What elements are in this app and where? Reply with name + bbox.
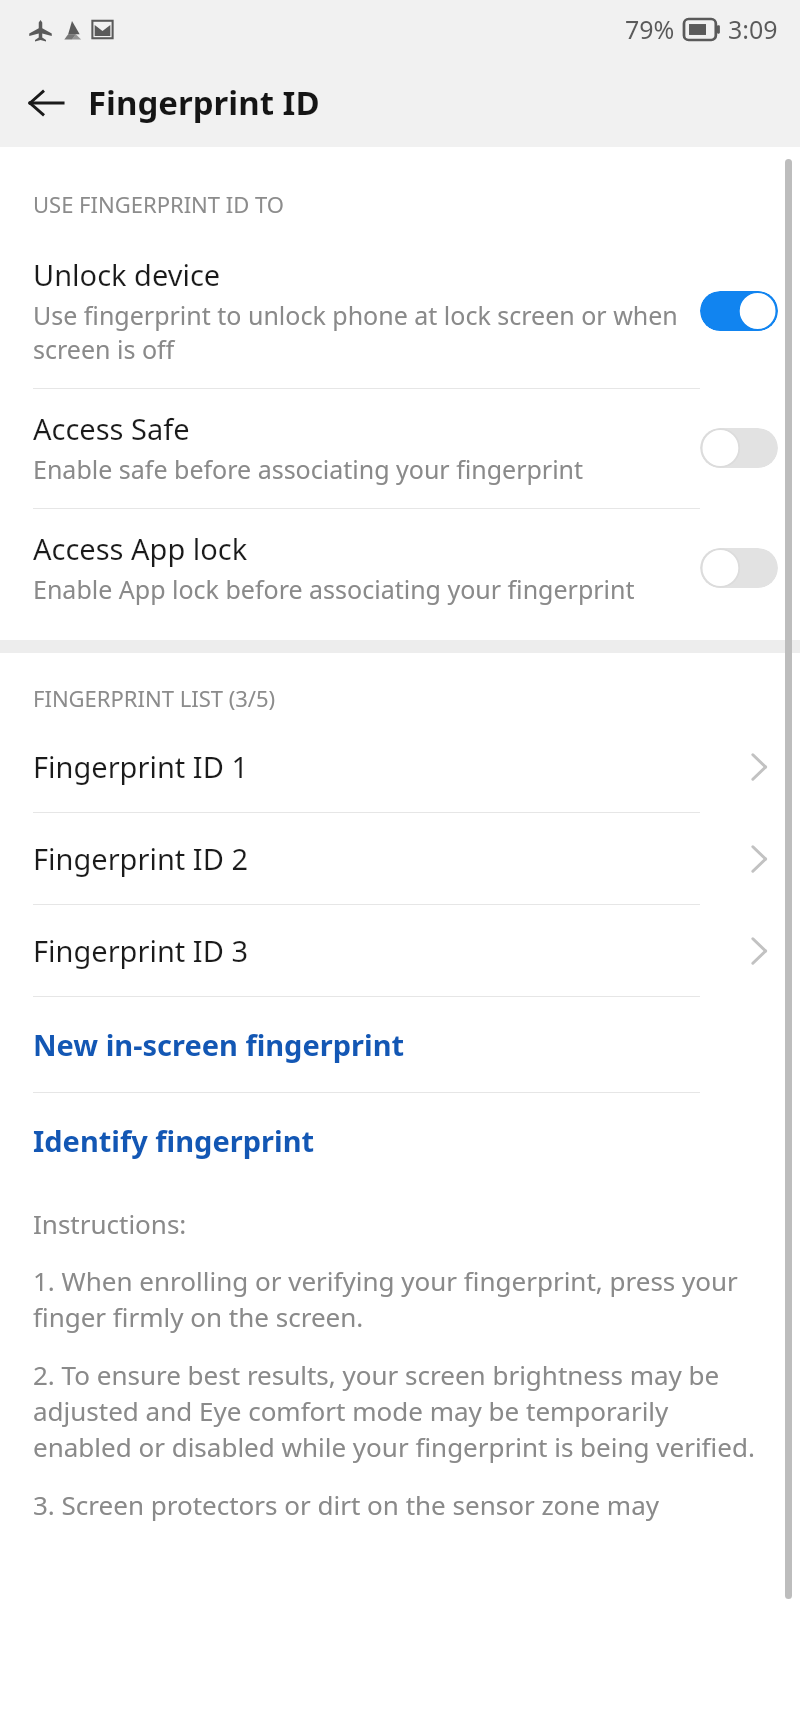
button[interactable]: Off: [700, 548, 778, 588]
staticText: Enable App lock before associating your …: [33, 572, 635, 606]
button[interactable]: On: [700, 291, 778, 331]
staticText: Fingerprint ID 2: [33, 839, 248, 878]
staticText: Use fingerprint to unlock phone at lock …: [33, 298, 682, 366]
staticText: Enable safe before associating your fing…: [33, 452, 584, 486]
button[interactable]: New in-screen fingerprint: [0, 997, 800, 1092]
staticText: 79%: [625, 12, 675, 46]
staticText: Fingerprint ID 3: [33, 931, 248, 970]
button[interactable]: Access App lock: [0, 509, 800, 628]
button[interactable]: Fingerprint ID 3: [0, 905, 800, 996]
staticText: Fingerprint ID 1: [33, 747, 248, 786]
button[interactable]: Access Safe: [0, 389, 800, 508]
staticText: Access Safe: [33, 409, 190, 448]
staticText: 3:09: [728, 12, 778, 46]
staticText: 1. When enrolling or verifying your fing…: [33, 1263, 760, 1335]
button[interactable]: Identify fingerprint: [0, 1093, 800, 1188]
staticText: FINGERPRINT LIST (3/5): [33, 683, 276, 713]
button[interactable]: Fingerprint ID 2: [0, 813, 800, 904]
staticText: New in-screen fingerprint: [33, 1025, 405, 1064]
button[interactable]: Unlock device: [0, 235, 800, 388]
button[interactable]: Fingerprint ID 1: [0, 721, 800, 812]
staticText: Fingerprint ID: [88, 80, 320, 125]
staticText: Identify fingerprint: [33, 1121, 315, 1160]
staticText: 3. Screen protectors or dirt on the sens…: [33, 1487, 659, 1522]
staticText: 2. To ensure best results, your screen b…: [33, 1357, 760, 1465]
button[interactable]: Off: [700, 428, 778, 468]
staticText: Unlock device: [33, 255, 221, 294]
staticText: Instructions:: [33, 1206, 187, 1241]
staticText: Access App lock: [33, 529, 248, 568]
button[interactable]: Back: [14, 71, 78, 135]
staticText: USE FINGERPRINT ID TO: [33, 189, 284, 219]
